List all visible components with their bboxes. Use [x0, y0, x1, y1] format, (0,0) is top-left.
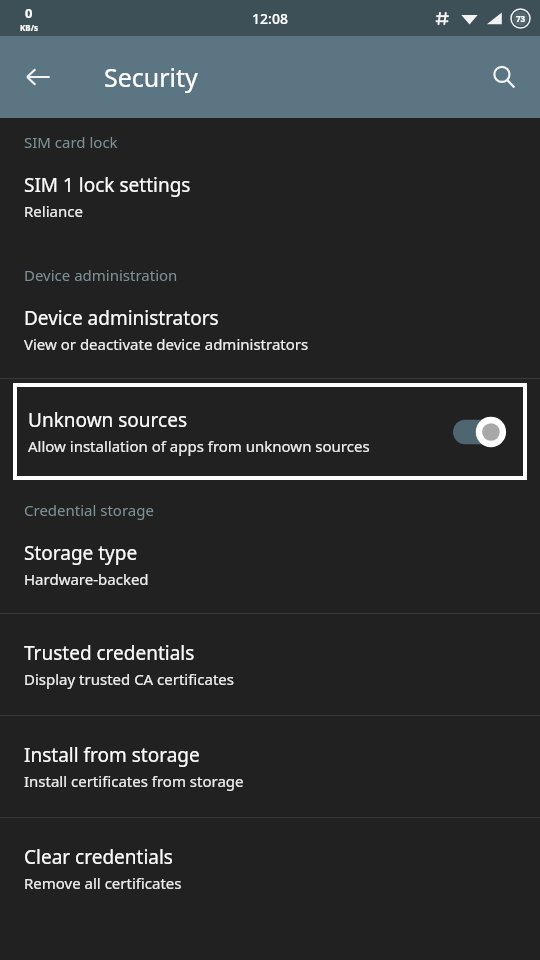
staticText: Storage type [24, 540, 138, 566]
button[interactable]: SIM 1 lock settings [0, 152, 540, 247]
staticText: 0 [25, 4, 33, 22]
staticText: Allow installation of apps from unknown … [28, 436, 370, 456]
button[interactable]: Trusted credentials [0, 614, 540, 715]
staticText: Device administration [24, 265, 540, 285]
staticText: Reliance [24, 201, 83, 221]
staticText: Install certificates from storage [24, 771, 244, 791]
button[interactable]: Clear credentials [0, 818, 540, 919]
staticText: Credential storage [24, 500, 540, 520]
staticText: 73 [516, 13, 526, 24]
staticText: KB/s [20, 22, 38, 33]
button[interactable]: Storage type [0, 520, 540, 613]
staticText: View or deactivate device administrators [24, 334, 309, 354]
staticText: SIM card lock [24, 132, 540, 152]
staticText: Hardware-backed [24, 569, 149, 589]
staticText: SIM 1 lock settings [24, 172, 191, 198]
staticText: Trusted credentials [24, 640, 195, 666]
button[interactable]: Back [10, 49, 66, 105]
staticText: Unknown sources [28, 407, 187, 433]
button[interactable]: Install from storage [0, 716, 540, 817]
staticText: Install from storage [24, 742, 200, 768]
button[interactable]: Search [476, 49, 532, 105]
button[interactable]: Unknown sources [17, 387, 523, 476]
staticText: Device administrators [24, 305, 219, 331]
button[interactable]: Unknown sources toggle [453, 415, 509, 449]
staticText: 12:08 [252, 9, 288, 28]
button[interactable]: Device administrators [0, 285, 540, 378]
staticText: Remove all certificates [24, 873, 182, 893]
staticText: Display trusted CA certificates [24, 669, 234, 689]
staticText: Clear credentials [24, 844, 173, 870]
staticText: Security [104, 60, 198, 94]
